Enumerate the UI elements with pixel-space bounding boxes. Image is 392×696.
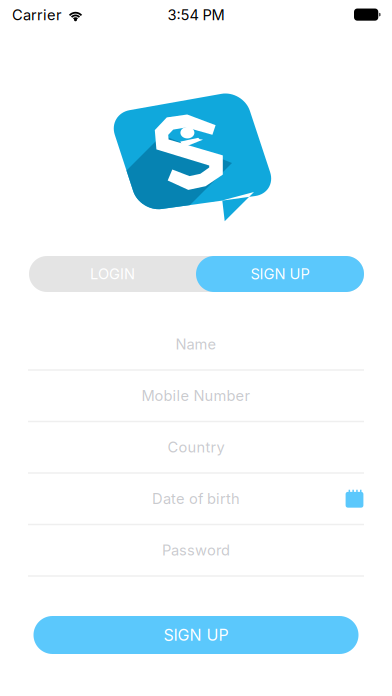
button[interactable]: SIGN UP	[196, 256, 364, 292]
button[interactable]: SIGN UP	[33, 616, 358, 654]
staticText: Mobile Number	[141, 387, 250, 405]
staticText: Password	[162, 541, 230, 559]
staticText: Country	[167, 438, 224, 456]
staticText: Carrier	[12, 6, 62, 24]
staticText: 3:54 PM	[167, 6, 224, 24]
staticText: SIGN UP	[250, 265, 309, 283]
staticText: SIGN UP	[163, 625, 228, 645]
staticText: Date of birth	[152, 490, 240, 508]
button[interactable]: LOGIN	[29, 256, 196, 292]
staticText: Name	[175, 335, 216, 353]
staticText: LOGIN	[90, 265, 135, 283]
